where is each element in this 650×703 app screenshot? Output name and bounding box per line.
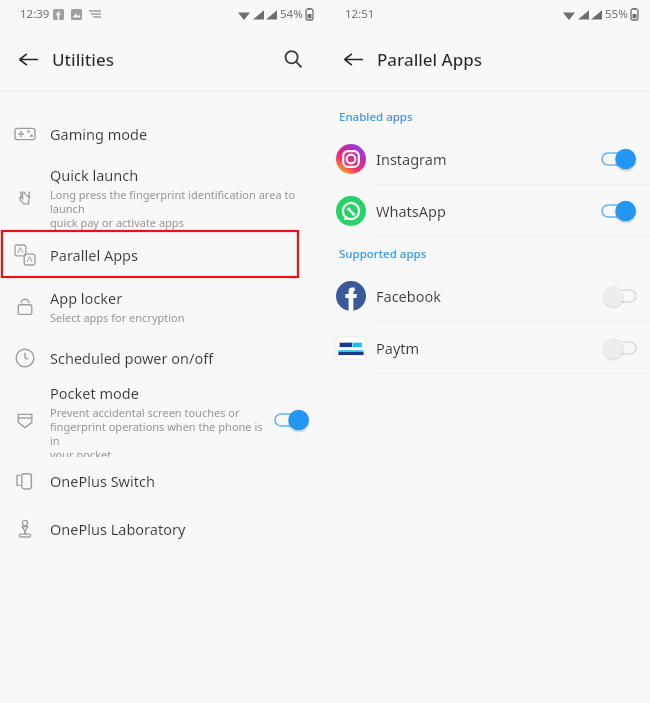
staticText: Scheduled power on/off bbox=[50, 348, 214, 368]
button[interactable]: App locker bbox=[0, 279, 325, 333]
button[interactable]: Gaming mode bbox=[0, 104, 325, 164]
button[interactable]: Scheduled power on/off bbox=[0, 333, 325, 383]
button[interactable]: Back bbox=[8, 39, 48, 79]
button[interactable]: Paytm bbox=[325, 322, 650, 373]
staticText: 12:39 bbox=[20, 6, 50, 22]
staticText: Parallel Apps bbox=[377, 48, 483, 71]
staticText: 55% bbox=[605, 6, 628, 22]
button[interactable]: Toggle on bbox=[602, 200, 636, 222]
button[interactable]: Pocket mode bbox=[0, 383, 325, 457]
staticText: Gaming mode bbox=[50, 124, 148, 144]
staticText: Paytm bbox=[376, 338, 602, 358]
staticText: Instagram bbox=[376, 149, 602, 169]
staticText: Prevent accidental screen touches or fin… bbox=[50, 405, 275, 457]
staticText: OnePlus Switch bbox=[50, 471, 155, 491]
staticText: App locker bbox=[50, 288, 123, 308]
button[interactable]: Toggle on bbox=[602, 148, 636, 170]
staticText: 54% bbox=[280, 6, 303, 22]
staticText: Pocket mode bbox=[50, 383, 139, 403]
button[interactable]: OnePlus Laboratory bbox=[0, 505, 325, 553]
staticText: Quick launch bbox=[50, 165, 139, 185]
button[interactable]: Back bbox=[333, 39, 373, 79]
staticText: Long press the fingerprint identificatio… bbox=[50, 187, 309, 230]
staticText: OnePlus Laboratory bbox=[50, 519, 186, 539]
button[interactable]: Toggle on bbox=[275, 409, 309, 431]
staticText: Parallel Apps bbox=[50, 245, 138, 265]
button[interactable]: Quick launch bbox=[0, 164, 325, 230]
button[interactable]: Toggle off bbox=[602, 337, 636, 359]
button[interactable]: Parallel Apps bbox=[0, 230, 325, 279]
button[interactable]: OnePlus Switch bbox=[0, 457, 325, 505]
button[interactable]: Search bbox=[273, 39, 313, 79]
staticText: Select apps for encryption bbox=[50, 310, 185, 325]
staticText: 12:51 bbox=[345, 6, 375, 22]
button[interactable]: WhatsApp bbox=[325, 185, 650, 236]
button[interactable]: Toggle off bbox=[602, 285, 636, 307]
staticText: WhatsApp bbox=[376, 201, 602, 221]
button[interactable]: Instagram bbox=[325, 133, 650, 184]
staticText: Supported apps bbox=[339, 246, 427, 262]
staticText: Enabled apps bbox=[339, 109, 413, 125]
staticText: Utilities bbox=[52, 48, 114, 71]
button[interactable]: Facebook bbox=[325, 270, 650, 321]
staticText: Facebook bbox=[376, 286, 602, 306]
